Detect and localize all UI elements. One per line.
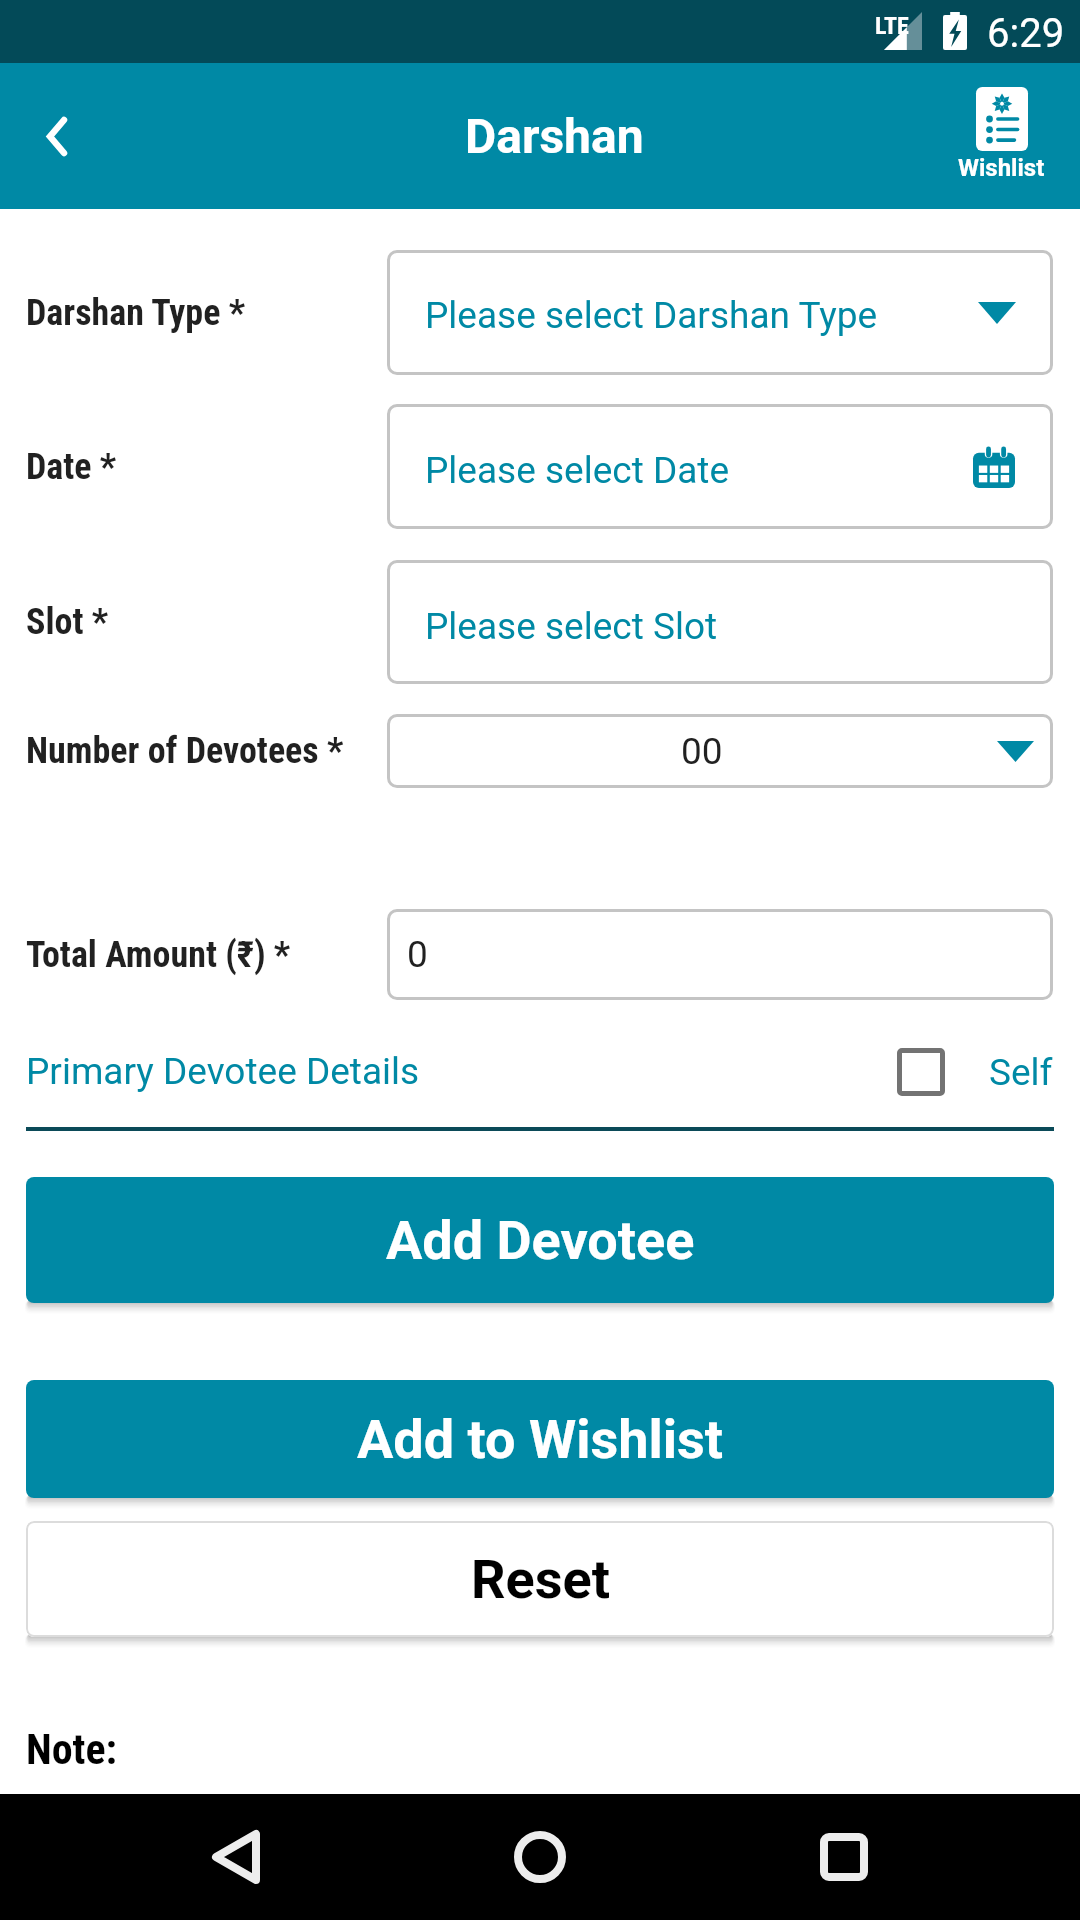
button[interactable]: Please select Date [387,404,1053,529]
staticText: Date * [26,446,117,488]
staticText: LTE [875,12,909,40]
staticText: 00 [681,730,723,773]
staticText: 0 [407,933,428,976]
button[interactable]: Please select Slot [387,560,1053,684]
staticText: Add to Wishlist [357,1408,724,1471]
staticText: Darshan Type * [26,292,246,334]
button[interactable]: 00 [387,714,1053,788]
button[interactable]: Please select Darshan Type [387,250,1053,375]
staticText: Add Devotee [386,1209,695,1272]
button[interactable]: Reset [26,1521,1054,1637]
button[interactable]: Add to Wishlist [26,1380,1054,1498]
button[interactable]: Add Devotee [26,1177,1054,1303]
staticText: Darshan [465,108,644,164]
staticText: Total Amount (₹) * [26,934,291,976]
staticText: Number of Devotees * [26,730,344,772]
button[interactable]: Recent apps [764,1794,924,1920]
staticText: Please select Darshan Type [425,294,878,337]
staticText: Note: [26,1725,118,1774]
staticText: Slot * [26,601,109,643]
button[interactable]: 0 [387,909,1053,1000]
button[interactable]: Primary Devotee Details [26,1050,420,1093]
staticText: Please select Slot [425,605,718,648]
staticText: Wishlist [958,154,1045,182]
button[interactable]: Self [897,1048,1053,1096]
button[interactable]: Home [460,1794,620,1920]
staticText: Reset [471,1548,610,1611]
button[interactable]: Back [156,1794,316,1920]
button[interactable]: Wishlist [922,63,1080,209]
button[interactable]: Back [0,63,112,209]
staticText: Please select Date [425,449,730,492]
staticText: 6:29 [987,10,1065,57]
staticText: Self [989,1051,1053,1094]
